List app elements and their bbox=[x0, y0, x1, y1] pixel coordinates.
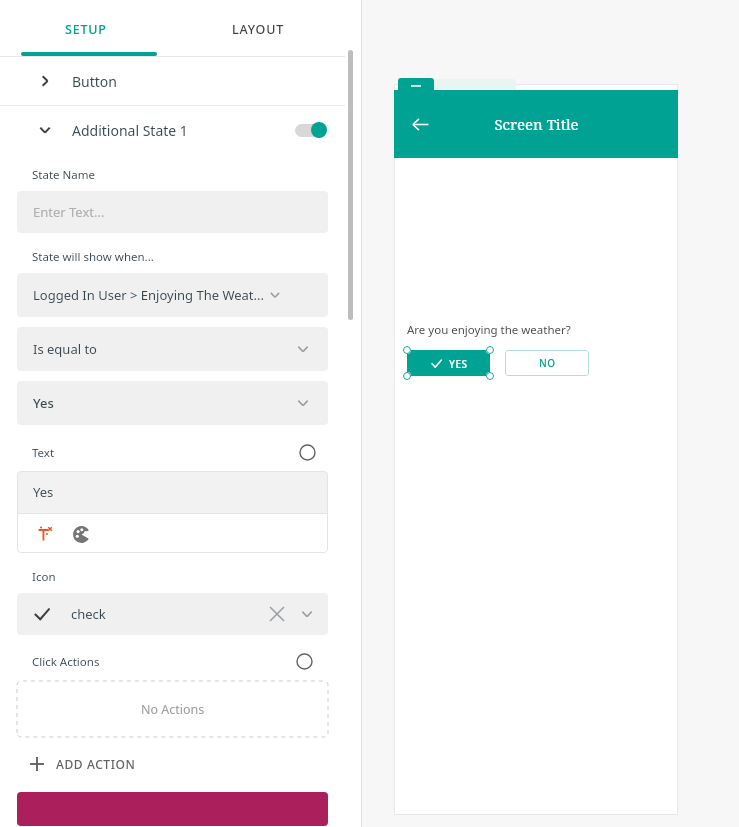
button[interactable]: Yes bbox=[17, 381, 328, 425]
button[interactable]: LAYOUT bbox=[172, 6, 344, 52]
staticText: Click Actions bbox=[32, 654, 100, 670]
button[interactable]: Toggle additional state bbox=[293, 120, 329, 140]
button[interactable]: ADD ACTION bbox=[17, 754, 144, 774]
button[interactable]: Back bbox=[402, 106, 438, 142]
button[interactable]: Button bbox=[0, 57, 345, 105]
staticText: Enter Text... bbox=[33, 203, 105, 221]
button[interactable]: No Actions bbox=[17, 681, 328, 737]
button[interactable]: Yes bbox=[17, 471, 328, 513]
button[interactable]: Additional State 1 bbox=[0, 106, 345, 154]
button[interactable]: SETUP bbox=[0, 6, 172, 52]
staticText: Screen Title bbox=[494, 114, 579, 134]
button[interactable]: check bbox=[17, 593, 328, 635]
button[interactable]: Clear icon bbox=[266, 603, 288, 625]
staticText: check bbox=[71, 605, 106, 623]
staticText: ADD ACTION bbox=[56, 756, 136, 772]
staticText: No Actions bbox=[141, 701, 205, 718]
staticText: Icon bbox=[32, 569, 56, 585]
staticText: Text bbox=[32, 445, 55, 461]
staticText: Logged In User > Enjoying The Weat... bbox=[33, 286, 265, 304]
staticText: Additional State 1 bbox=[72, 121, 188, 140]
button[interactable]: Is equal to bbox=[17, 327, 328, 371]
button[interactable]: NO bbox=[505, 350, 589, 376]
button[interactable]: Help about text bbox=[297, 442, 318, 463]
staticText: LAYOUT bbox=[232, 21, 285, 38]
button[interactable]: Help about click actions bbox=[294, 651, 315, 672]
button[interactable]: Magic text bbox=[33, 522, 57, 546]
button[interactable] bbox=[17, 792, 328, 826]
staticText: NO bbox=[539, 356, 556, 370]
button[interactable]: Text color bbox=[69, 522, 93, 546]
staticText: Yes bbox=[33, 483, 54, 501]
button[interactable]: Collapse bbox=[398, 78, 434, 92]
staticText: Is equal to bbox=[33, 340, 97, 358]
button[interactable]: YES bbox=[407, 350, 490, 376]
staticText: YES bbox=[449, 357, 468, 371]
button[interactable]: Logged In User > Enjoying The Weat... bbox=[17, 273, 328, 317]
staticText: Yes bbox=[33, 394, 54, 412]
staticText: Button bbox=[72, 72, 117, 91]
staticText: SETUP bbox=[65, 21, 107, 38]
staticText: State will show when... bbox=[32, 249, 154, 265]
staticText: Are you enjoying the weather? bbox=[407, 322, 571, 338]
staticText: State Name bbox=[32, 167, 95, 183]
button[interactable]: Enter Text... bbox=[17, 191, 328, 233]
